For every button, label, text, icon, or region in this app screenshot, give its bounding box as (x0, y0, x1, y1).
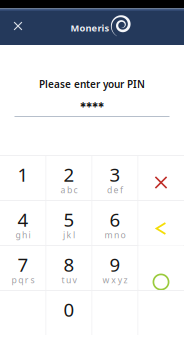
staticText: mno (104, 229, 126, 241)
staticText: 4 (17, 207, 28, 232)
staticText: 3 (109, 162, 120, 187)
button[interactable]: 9 (92, 246, 137, 290)
staticText: 2 (63, 162, 74, 187)
staticText: abc (60, 184, 78, 196)
button[interactable]: 1 (0, 156, 45, 200)
button[interactable]: 7 (0, 246, 45, 290)
staticText: jkl (63, 229, 75, 241)
staticText: 9 (109, 252, 120, 277)
staticText: pqrs (12, 274, 34, 286)
staticText: 0 (63, 297, 74, 322)
staticText: wxyz (103, 274, 127, 286)
staticText: Please enter your PIN (39, 77, 145, 91)
staticText: 6 (109, 207, 120, 232)
button[interactable]: Cancel (138, 156, 183, 200)
staticText: ✱✱✱✱ (80, 101, 104, 109)
button[interactable]: 0 (46, 291, 91, 335)
button[interactable]: Close (2, 10, 34, 42)
staticText: def (107, 184, 123, 196)
button[interactable]: 3 (92, 156, 137, 200)
staticText: Moneris (70, 22, 109, 34)
button[interactable]: 4 (0, 201, 45, 245)
button[interactable]: 2 (46, 156, 91, 200)
staticText: 8 (63, 252, 74, 277)
staticText: 5 (63, 207, 74, 232)
button[interactable]: Confirm (138, 246, 183, 290)
button[interactable]: 8 (46, 246, 91, 290)
staticText: 7 (17, 252, 28, 277)
button[interactable]: 5 (46, 201, 91, 245)
staticText: 1 (17, 162, 28, 187)
staticText: tuv (61, 274, 77, 286)
button[interactable]: 6 (92, 201, 137, 245)
button[interactable]: Backspace (138, 201, 183, 245)
staticText: ghi (15, 229, 31, 241)
